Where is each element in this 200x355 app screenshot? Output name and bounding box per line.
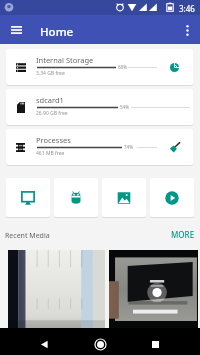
button[interactable]: Apps [54,178,98,217]
staticText: 74% [124,144,133,150]
staticText: 54% [120,104,129,110]
staticText: 3:46 [179,3,195,14]
button[interactable]: Open navigation menu [5,19,27,41]
staticText: 461 MB free [36,150,65,157]
staticText: Internal Storage [36,55,94,65]
button[interactable]: Recent photo 2 [109,250,198,328]
button[interactable]: Recent apps [144,333,166,355]
staticText: MORE [171,229,195,240]
button[interactable]: Processes [6,129,193,165]
staticText: 68% [118,64,127,70]
button[interactable]: Back [33,333,55,355]
button[interactable]: More options [176,19,198,41]
staticText: Processes [36,135,71,145]
button[interactable]: Videos [150,178,194,217]
button[interactable]: Home [89,333,111,355]
button[interactable]: Images [102,178,146,217]
staticText: Home [40,24,74,40]
button[interactable]: Screen mirroring [6,178,50,217]
button[interactable]: sdcard1 [6,89,193,125]
button[interactable]: MORE [168,227,198,242]
staticText: sdcard1 [36,95,64,105]
staticText: Recent Media [5,231,50,241]
button[interactable]: Internal Storage [6,49,193,85]
button[interactable]: Recent photo 1 [8,250,105,328]
staticText: 26.90 GB free [36,110,68,117]
staticText: 3.34 GB free [36,70,65,77]
